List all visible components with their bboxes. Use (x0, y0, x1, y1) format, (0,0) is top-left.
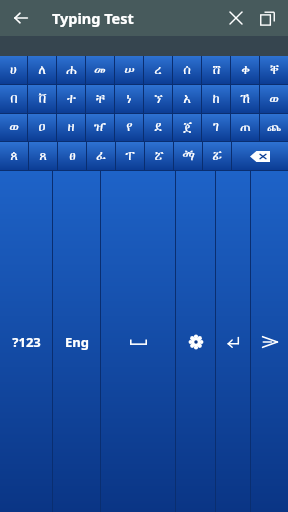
button[interactable]: በ (0, 85, 27, 113)
staticText: ጨ (267, 121, 281, 134)
staticText: ኸ (240, 93, 250, 106)
staticText: ተ (67, 93, 76, 106)
staticText: Eng (65, 333, 89, 351)
button[interactable]: ወ (0, 114, 27, 141)
staticText: ዐ (38, 121, 46, 134)
button[interactable]: Space (101, 171, 175, 512)
button[interactable]: Eng (53, 171, 100, 512)
button[interactable]: ዘ (57, 114, 85, 141)
button[interactable]: ጨ (260, 114, 288, 141)
staticText: ፐ (125, 150, 135, 163)
staticText: ረ (154, 64, 162, 77)
button[interactable]: Enter (216, 171, 250, 512)
button[interactable]: ቀ (231, 56, 259, 84)
staticText: Typing Test (52, 8, 134, 28)
staticText: ጰ (10, 150, 18, 163)
button[interactable]: ለ (28, 56, 56, 84)
staticText: በ (10, 93, 18, 106)
button[interactable]: ?123 (0, 171, 52, 512)
button[interactable]: Settings (176, 171, 215, 512)
staticText: ሸ (212, 64, 221, 77)
button[interactable]: ገ (202, 114, 230, 141)
button[interactable]: ኘ (144, 85, 172, 113)
staticText: ጀ (183, 121, 192, 134)
button[interactable]: ፈ (87, 142, 115, 170)
button[interactable]: Send (251, 171, 288, 512)
button[interactable]: ሀ (0, 56, 27, 84)
staticText: ደ (154, 121, 162, 134)
button[interactable]: ወ (260, 85, 288, 113)
button[interactable]: ነ (115, 85, 143, 113)
button[interactable]: ሐ (57, 56, 85, 84)
staticText: ቐ (270, 64, 279, 77)
button[interactable]: ጰ (0, 142, 28, 170)
staticText: ቀ (241, 64, 250, 77)
staticText: ሠ (124, 64, 135, 77)
staticText: ሐ (66, 64, 77, 77)
button[interactable]: ኸ (231, 85, 259, 113)
button[interactable]: Backspace (232, 142, 288, 170)
button[interactable]: ሸ (202, 56, 230, 84)
button[interactable]: ጠ (231, 114, 259, 141)
button[interactable]: Close (221, 3, 251, 33)
button[interactable]: ደ (144, 114, 172, 141)
button[interactable]: ፀ (58, 142, 86, 170)
staticText: ወ (269, 93, 279, 106)
button[interactable]: ቐ (260, 56, 288, 84)
button[interactable]: ጸ (29, 142, 57, 170)
staticText: ዠ (94, 121, 106, 134)
button[interactable]: መ (86, 56, 114, 84)
staticText: ሀ (10, 64, 17, 77)
staticText: የ (126, 121, 133, 134)
button[interactable]: ፐ (116, 142, 144, 170)
button[interactable]: Back (6, 3, 36, 33)
staticText: ፈ (96, 150, 106, 163)
staticText: ሰ (183, 64, 191, 77)
staticText: ለ (38, 64, 46, 77)
staticText: ቸ (96, 93, 105, 106)
button[interactable]: ፙ (174, 142, 202, 170)
button[interactable]: ከ (202, 85, 230, 113)
staticText: ፘ (154, 150, 164, 163)
button[interactable]: ቨ (28, 85, 56, 113)
button[interactable]: Copy (252, 3, 282, 33)
button[interactable]: ሰ (173, 56, 201, 84)
button[interactable]: ዐ (28, 114, 56, 141)
staticText: ጠ (240, 121, 251, 134)
staticText: ከ (212, 93, 220, 106)
staticText: ወ (9, 121, 19, 134)
button[interactable]: አ (173, 85, 201, 113)
staticText: ዘ (67, 121, 75, 134)
button[interactable]: ቸ (86, 85, 114, 113)
button[interactable]: ረ (144, 56, 172, 84)
button[interactable]: ፘ (145, 142, 173, 170)
button[interactable]: ዠ (86, 114, 114, 141)
staticText: ፙ (182, 150, 195, 163)
staticText: መ (94, 64, 106, 77)
button[interactable]: የ (115, 114, 143, 141)
staticText: ኘ (154, 93, 163, 106)
staticText: ቨ (38, 93, 47, 106)
staticText: ነ (126, 93, 132, 106)
staticText: ?123 (12, 333, 41, 351)
button[interactable]: ተ (57, 85, 85, 113)
button[interactable]: ሠ (115, 56, 143, 84)
staticText: ጸ (39, 150, 47, 163)
staticText: አ (183, 93, 191, 106)
staticText: ፀ (69, 150, 76, 163)
staticText: ፚ (212, 150, 222, 163)
button[interactable]: ጀ (173, 114, 201, 141)
staticText: ገ (213, 121, 219, 134)
button[interactable]: ፚ (203, 142, 231, 170)
